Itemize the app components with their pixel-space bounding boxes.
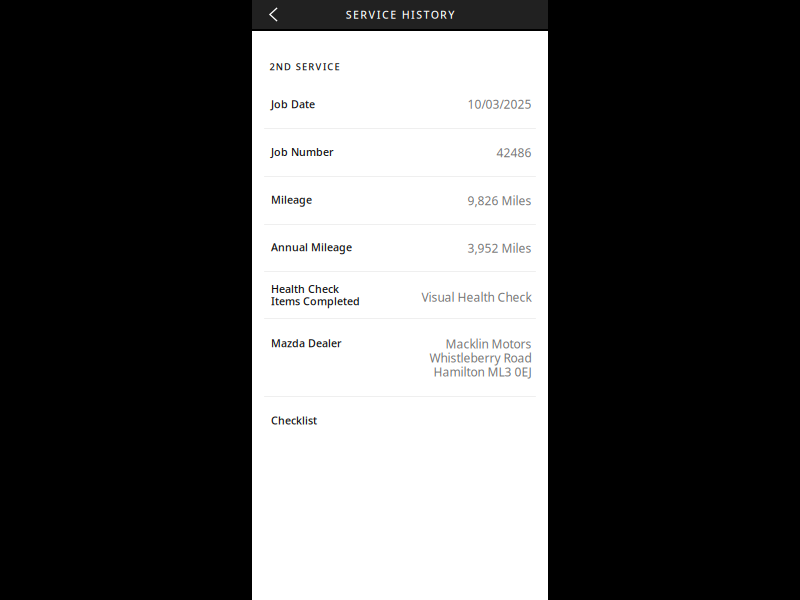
- staticText: 3,952 Miles: [467, 240, 531, 256]
- staticText: 42486: [496, 144, 531, 160]
- staticText: Macklin Motors: [445, 336, 531, 352]
- staticText: Checklist: [271, 413, 317, 427]
- button[interactable]: Checklist: [252, 397, 548, 446]
- staticText: Job Number: [271, 145, 334, 159]
- staticText: 9,826 Miles: [467, 192, 531, 208]
- staticText: Mileage: [271, 193, 312, 207]
- staticText: Health Check: [271, 282, 339, 296]
- button[interactable]: Back: [252, 0, 295, 29]
- staticText: Items Completed: [271, 294, 360, 308]
- staticText: 2ND SERVICE: [269, 60, 339, 73]
- staticText: Hamilton ML3 0EJ: [433, 364, 531, 380]
- staticText: Annual Mileage: [271, 240, 352, 254]
- staticText: 10/03/2025: [467, 96, 531, 112]
- staticText: Visual Health Check: [421, 289, 531, 305]
- staticText: Whistleberry Road: [429, 350, 531, 366]
- staticText: Mazda Dealer: [271, 336, 342, 350]
- staticText: SERVICE HISTORY: [346, 7, 454, 22]
- staticText: Job Date: [271, 97, 315, 111]
